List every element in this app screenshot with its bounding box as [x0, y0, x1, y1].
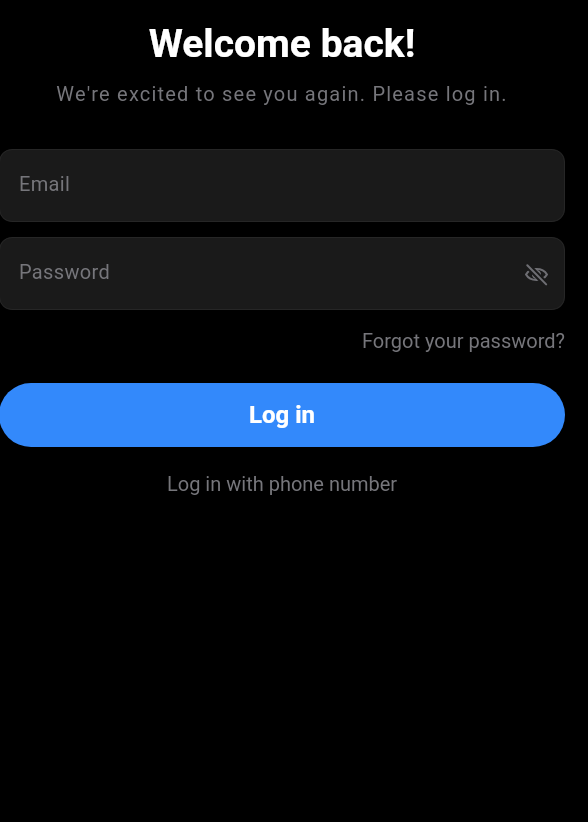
staticText: Password — [19, 260, 111, 283]
button[interactable]: Password — [0, 237, 565, 310]
button[interactable]: Forgot your password? — [362, 329, 565, 352]
staticText: Email — [19, 172, 71, 195]
staticText: Log in — [249, 401, 316, 429]
button[interactable]: Log in with phone number — [167, 472, 398, 495]
button[interactable]: Email — [0, 149, 565, 222]
staticText: We're excited to see you again. Please l… — [0, 82, 565, 105]
button[interactable]: Log in — [0, 383, 565, 447]
button[interactable]: Show password — [512, 250, 560, 298]
staticText: Welcome back! — [0, 21, 565, 67]
